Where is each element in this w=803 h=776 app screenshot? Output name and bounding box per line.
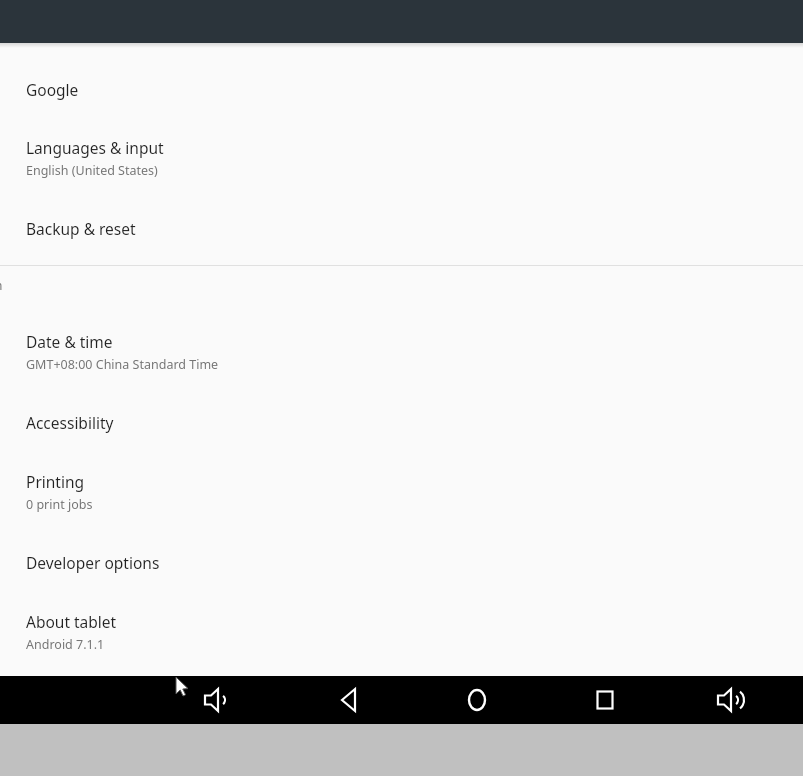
staticText: GMT+08:00 China Standard Time xyxy=(26,356,219,373)
staticText: Accessibility xyxy=(26,412,114,433)
button[interactable]: Backup & reset xyxy=(0,179,803,239)
staticText: Google xyxy=(26,79,79,100)
staticText: Android 7.1.1 xyxy=(26,636,105,653)
staticText: English (United States) xyxy=(26,162,158,179)
staticText: 0 print jobs xyxy=(26,496,93,513)
staticText: Languages & input xyxy=(26,137,164,158)
staticText: Date & time xyxy=(26,331,113,352)
button[interactable]: Recent apps xyxy=(579,676,631,724)
button[interactable]: Accessibility xyxy=(0,373,803,433)
staticText: Backup & reset xyxy=(26,218,136,239)
button[interactable]: Date & time xyxy=(0,294,803,373)
button[interactable]: Developer options xyxy=(0,513,803,573)
button[interactable]: Volume up xyxy=(707,676,759,724)
button[interactable]: Google xyxy=(0,43,803,100)
staticText: Developer options xyxy=(26,552,160,573)
button[interactable]: Printing xyxy=(0,433,803,513)
button[interactable]: About tablet xyxy=(0,573,803,653)
staticText: About tablet xyxy=(26,611,117,632)
button[interactable]: Back xyxy=(323,676,375,724)
staticText: Printing xyxy=(26,471,85,492)
button[interactable]: Languages & input xyxy=(0,100,803,179)
button[interactable]: Volume down xyxy=(192,676,244,724)
staticText: System xyxy=(0,277,3,294)
button[interactable]: Home xyxy=(451,676,503,724)
